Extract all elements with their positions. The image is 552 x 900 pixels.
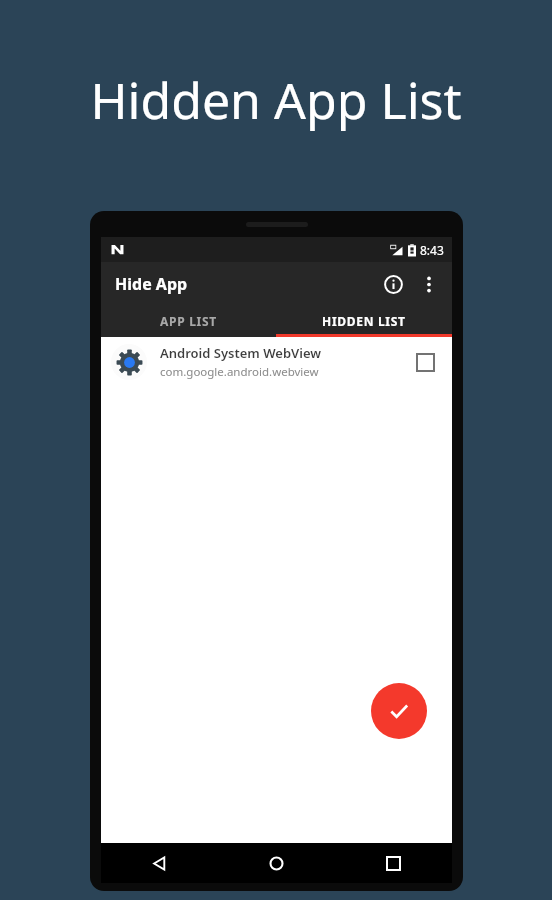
- button[interactable]: Recent apps: [335, 843, 452, 883]
- staticText: HIDDEN LIST: [322, 313, 406, 329]
- button[interactable]: Info: [374, 265, 412, 303]
- button[interactable]: Back: [101, 843, 218, 883]
- staticText: Hidden App List: [0, 66, 552, 134]
- button[interactable]: More options: [412, 267, 446, 301]
- staticText: Android System WebView: [160, 344, 322, 362]
- staticText: APP LIST: [160, 313, 217, 329]
- staticText: 8:43: [420, 242, 444, 258]
- staticText: Hide App: [115, 273, 188, 295]
- button[interactable]: APP LIST: [101, 305, 276, 337]
- staticText: com.google.android.webview: [160, 364, 319, 380]
- button[interactable]: HIDDEN LIST: [276, 305, 452, 337]
- button[interactable]: Select app: [408, 345, 442, 379]
- button[interactable]: Android System WebView: [101, 337, 452, 387]
- button[interactable]: Confirm: [371, 683, 427, 739]
- button[interactable]: Home: [218, 843, 335, 883]
